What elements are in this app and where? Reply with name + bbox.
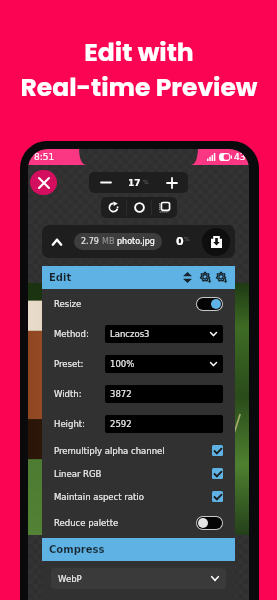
button[interactable]: 3872	[105, 385, 223, 403]
staticText: 3872	[110, 389, 132, 399]
staticText: Linear RGB	[54, 469, 102, 479]
staticText: Edit with	[84, 35, 194, 70]
button[interactable]: Save	[202, 228, 230, 256]
button[interactable]: 2.79	[74, 233, 162, 250]
staticText: Maintain aspect ratio	[54, 492, 144, 502]
staticText: Real-time Preview	[20, 70, 258, 105]
staticText: %	[141, 178, 149, 185]
staticText: 100%	[110, 359, 135, 369]
staticText: Preset:	[54, 359, 105, 369]
button[interactable]: Maintain aspect ratio	[42, 485, 235, 508]
button[interactable]: 2592	[105, 415, 223, 433]
button[interactable]: Close	[30, 170, 57, 195]
button[interactable]: Canvas size	[152, 197, 177, 218]
staticText: 2592	[110, 419, 132, 429]
button[interactable]: 100%	[105, 355, 223, 373]
staticText: MB	[102, 237, 117, 246]
button[interactable]: Reduce palette	[42, 508, 235, 538]
button[interactable]: Linear RGB	[42, 462, 235, 485]
button[interactable]: More settings	[214, 266, 230, 289]
staticText: Premultiply alpha channel	[54, 446, 165, 456]
button[interactable]: Zoom out	[89, 172, 122, 193]
staticText: WebP	[58, 574, 82, 584]
staticText: Method:	[54, 329, 105, 339]
staticText: Reduce palette	[54, 518, 119, 528]
staticText: 0	[176, 235, 184, 248]
button[interactable]: Settings	[198, 266, 214, 289]
button[interactable]: Collapse	[46, 225, 68, 258]
button[interactable]: Resize	[42, 289, 235, 319]
staticText: Lanczos3	[110, 329, 150, 339]
button[interactable]: Reorder	[181, 266, 194, 289]
button[interactable]: Premultiply alpha channel	[42, 439, 235, 462]
staticText: 8:51	[34, 152, 55, 162]
staticText: Width:	[54, 389, 105, 399]
staticText: Edit	[49, 272, 72, 284]
staticText: Resize	[54, 299, 82, 309]
staticText: photo.jpg	[117, 237, 155, 246]
button[interactable]: Rotate	[101, 197, 126, 218]
staticText: 2.79	[81, 237, 102, 246]
button[interactable]: Lanczos3	[105, 325, 223, 343]
button[interactable]: Edit	[42, 266, 235, 289]
button[interactable]: 0	[176, 225, 190, 258]
staticText: 43	[234, 152, 246, 162]
staticText: Compress	[49, 544, 105, 556]
button[interactable]: Compress	[42, 538, 235, 561]
button[interactable]: Zoom in	[155, 172, 188, 193]
staticText: 17	[128, 178, 141, 188]
button[interactable]: 17	[122, 172, 155, 193]
staticText: %	[184, 235, 190, 242]
staticText: Height:	[54, 419, 105, 429]
button[interactable]: WebP	[51, 568, 226, 589]
button[interactable]: Ellipse select	[127, 197, 151, 218]
